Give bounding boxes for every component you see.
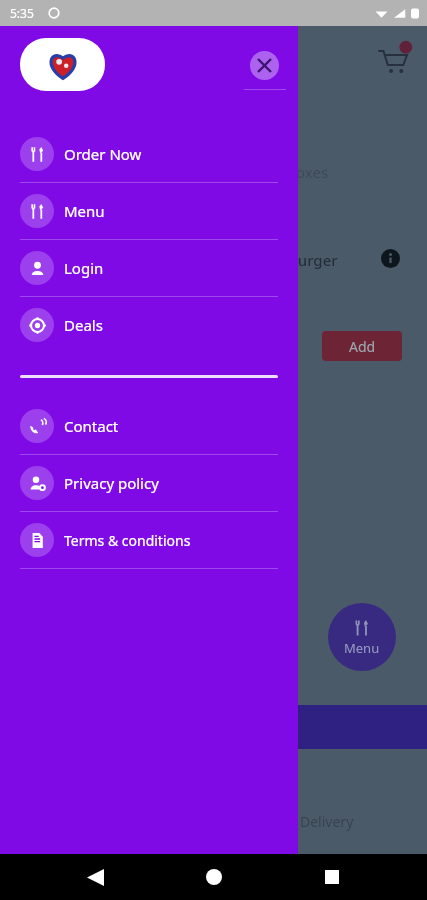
- button[interactable]: Contact: [0, 398, 298, 454]
- staticText: Relish It Boxes: [226, 162, 329, 182]
- button[interactable]: Recent apps: [309, 854, 355, 900]
- staticText: Deals: [64, 315, 103, 335]
- button[interactable]: Back: [72, 854, 118, 900]
- button[interactable]: Home: [191, 854, 237, 900]
- button[interactable]: Menu: [0, 183, 298, 239]
- button[interactable]: Order Now: [0, 126, 298, 182]
- staticText: Cheese Burger: [232, 250, 338, 270]
- button[interactable]: Add: [322, 331, 402, 361]
- staticText: Login: [64, 258, 104, 278]
- staticText: Privacy policy: [64, 473, 159, 493]
- button[interactable]: Menu: [328, 603, 396, 671]
- staticText: Menu: [344, 639, 380, 657]
- button[interactable]: Close: [250, 51, 279, 80]
- button[interactable]: Logo: [20, 38, 105, 91]
- staticText: Order Now: [64, 144, 142, 164]
- staticText: Menu: [64, 201, 105, 221]
- button[interactable]: Info: [381, 249, 400, 268]
- button[interactable]: Deals: [0, 297, 298, 353]
- staticText: Terms & conditions: [64, 531, 191, 550]
- staticText: Contact: [64, 416, 119, 436]
- button[interactable]: Terms & conditions: [0, 512, 298, 568]
- staticText: Delivery: [300, 812, 354, 831]
- button[interactable]: View cart: [0, 705, 427, 749]
- button[interactable]: Privacy policy: [0, 455, 298, 511]
- button[interactable]: Cart: [367, 34, 419, 86]
- button[interactable]: Login: [0, 240, 298, 296]
- staticText: Add: [349, 337, 376, 356]
- staticText: 5:35: [10, 5, 34, 21]
